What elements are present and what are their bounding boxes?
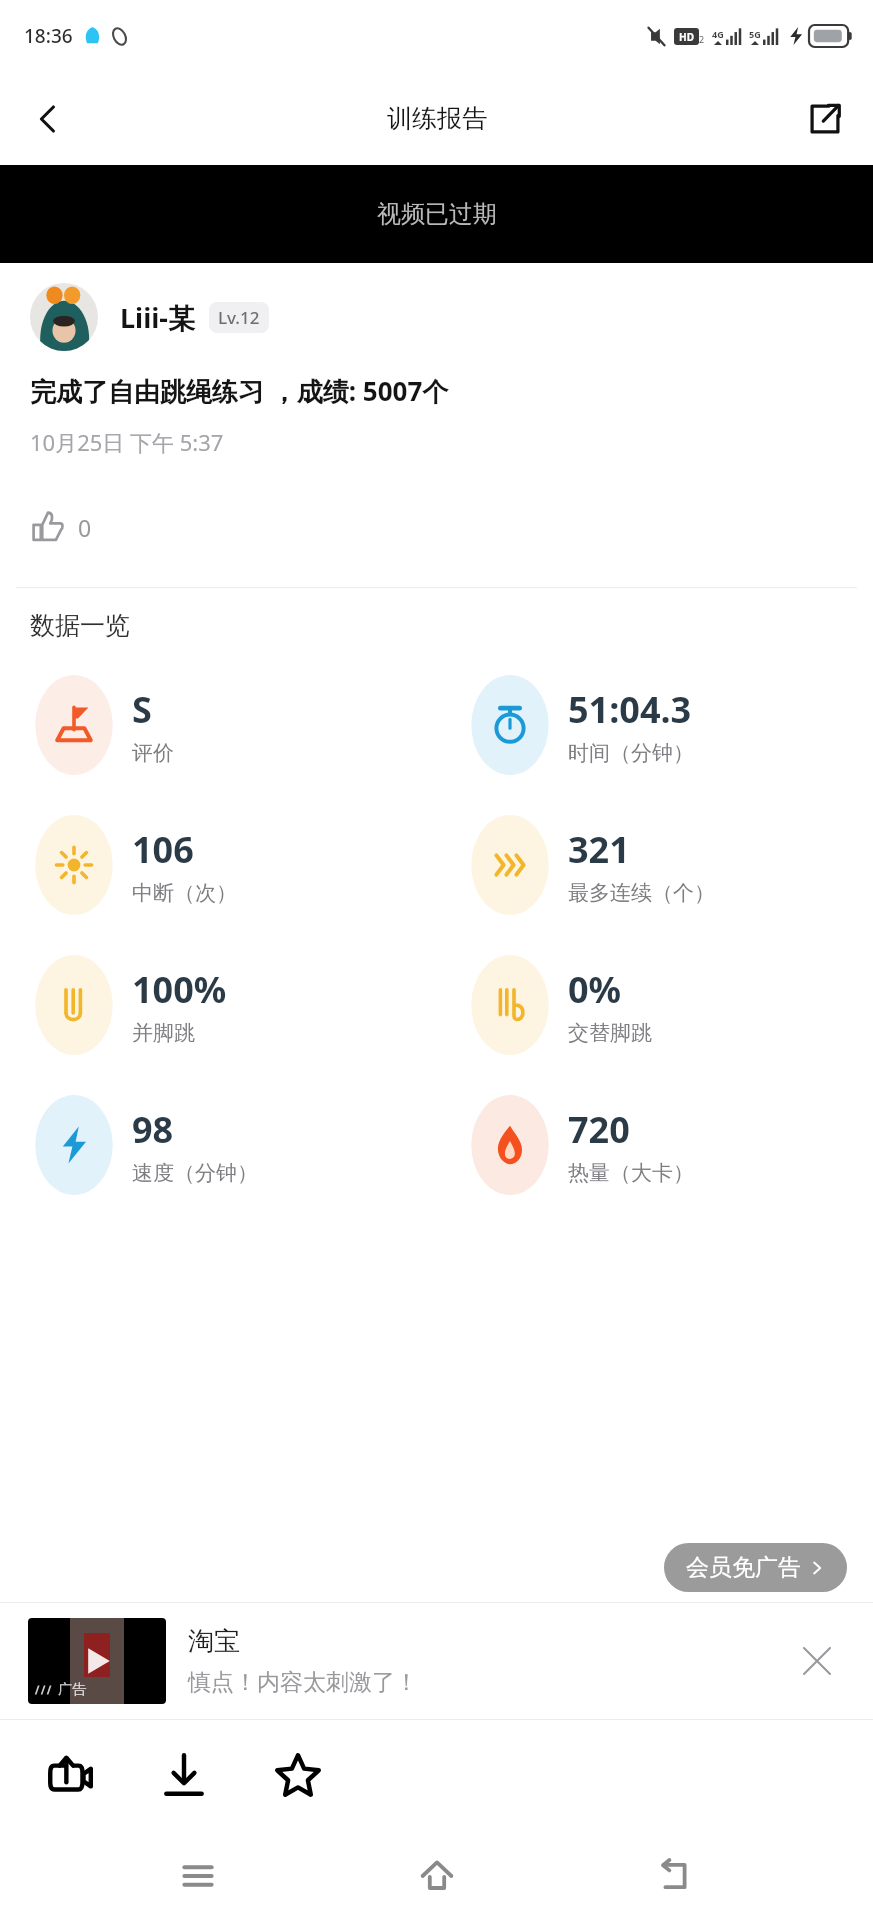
staticText: 18:36 [24, 23, 73, 49]
staticText: 100% [132, 965, 227, 1014]
staticText: Liii-某 [120, 299, 195, 336]
staticText: 训练报告 [387, 103, 487, 134]
button[interactable]: 98 [30, 1075, 436, 1215]
button[interactable]: 广告 [28, 1618, 845, 1704]
staticText: 数据一览 [30, 610, 130, 641]
staticText: 热量（大卡） [568, 1160, 694, 1186]
button[interactable]: 0% [466, 935, 873, 1075]
button[interactable]: 0 [30, 509, 92, 545]
button[interactable]: Favorite [262, 1740, 334, 1812]
button[interactable]: Home [397, 1836, 477, 1916]
staticText: 5G [749, 28, 761, 40]
button[interactable]: Download [148, 1740, 220, 1812]
button[interactable]: 100% [30, 935, 436, 1075]
staticText: 时间（分钟） [568, 740, 694, 766]
button[interactable]: 106 [30, 795, 436, 935]
staticText: 0 [78, 512, 92, 543]
staticText: 评价 [132, 740, 174, 766]
button[interactable]: 会员免广告 [664, 1543, 847, 1592]
staticText: 4G [712, 28, 724, 40]
button[interactable]: Back [635, 1836, 715, 1916]
button[interactable]: Back [14, 85, 82, 153]
staticText: 98 [132, 1105, 174, 1154]
staticText: 广告 [58, 1681, 86, 1699]
button[interactable]: 51:04.3 [466, 655, 873, 795]
staticText: 10月25日 下午 5:37 [30, 427, 224, 457]
staticText: 慎点！内容太刺激了！ [188, 1668, 418, 1697]
staticText: Lv.12 [218, 306, 260, 329]
button[interactable]: 321 [466, 795, 873, 935]
staticText: 106 [132, 825, 194, 874]
staticText: 321 [568, 825, 630, 874]
button[interactable]: Close ad [789, 1633, 845, 1689]
staticText: 并脚跳 [132, 1020, 195, 1046]
staticText: 2 [699, 33, 705, 45]
staticText: 视频已过期 [377, 199, 497, 229]
button[interactable]: Liii-某 [30, 283, 843, 351]
staticText: 720 [568, 1105, 630, 1154]
button[interactable]: Share video [34, 1740, 106, 1812]
staticText: 最多连续（个） [568, 880, 715, 906]
staticText: 51:04.3 [568, 685, 692, 734]
button[interactable]: Recents [158, 1836, 238, 1916]
staticText: 交替脚跳 [568, 1020, 652, 1046]
staticText: 淘宝 [188, 1625, 240, 1658]
staticText: 中断（次） [132, 880, 237, 906]
staticText: HD [679, 30, 694, 44]
button[interactable]: S [30, 655, 436, 795]
staticText: 会员免广告 [686, 1553, 801, 1582]
button[interactable]: Share [791, 85, 859, 153]
staticText: S [132, 685, 152, 734]
staticText: 完成了自由跳绳练习 ，成绩: 5007个 [30, 373, 449, 409]
staticText: 0% [568, 965, 622, 1014]
button[interactable]: 720 [466, 1075, 873, 1215]
staticText: 速度（分钟） [132, 1160, 258, 1186]
